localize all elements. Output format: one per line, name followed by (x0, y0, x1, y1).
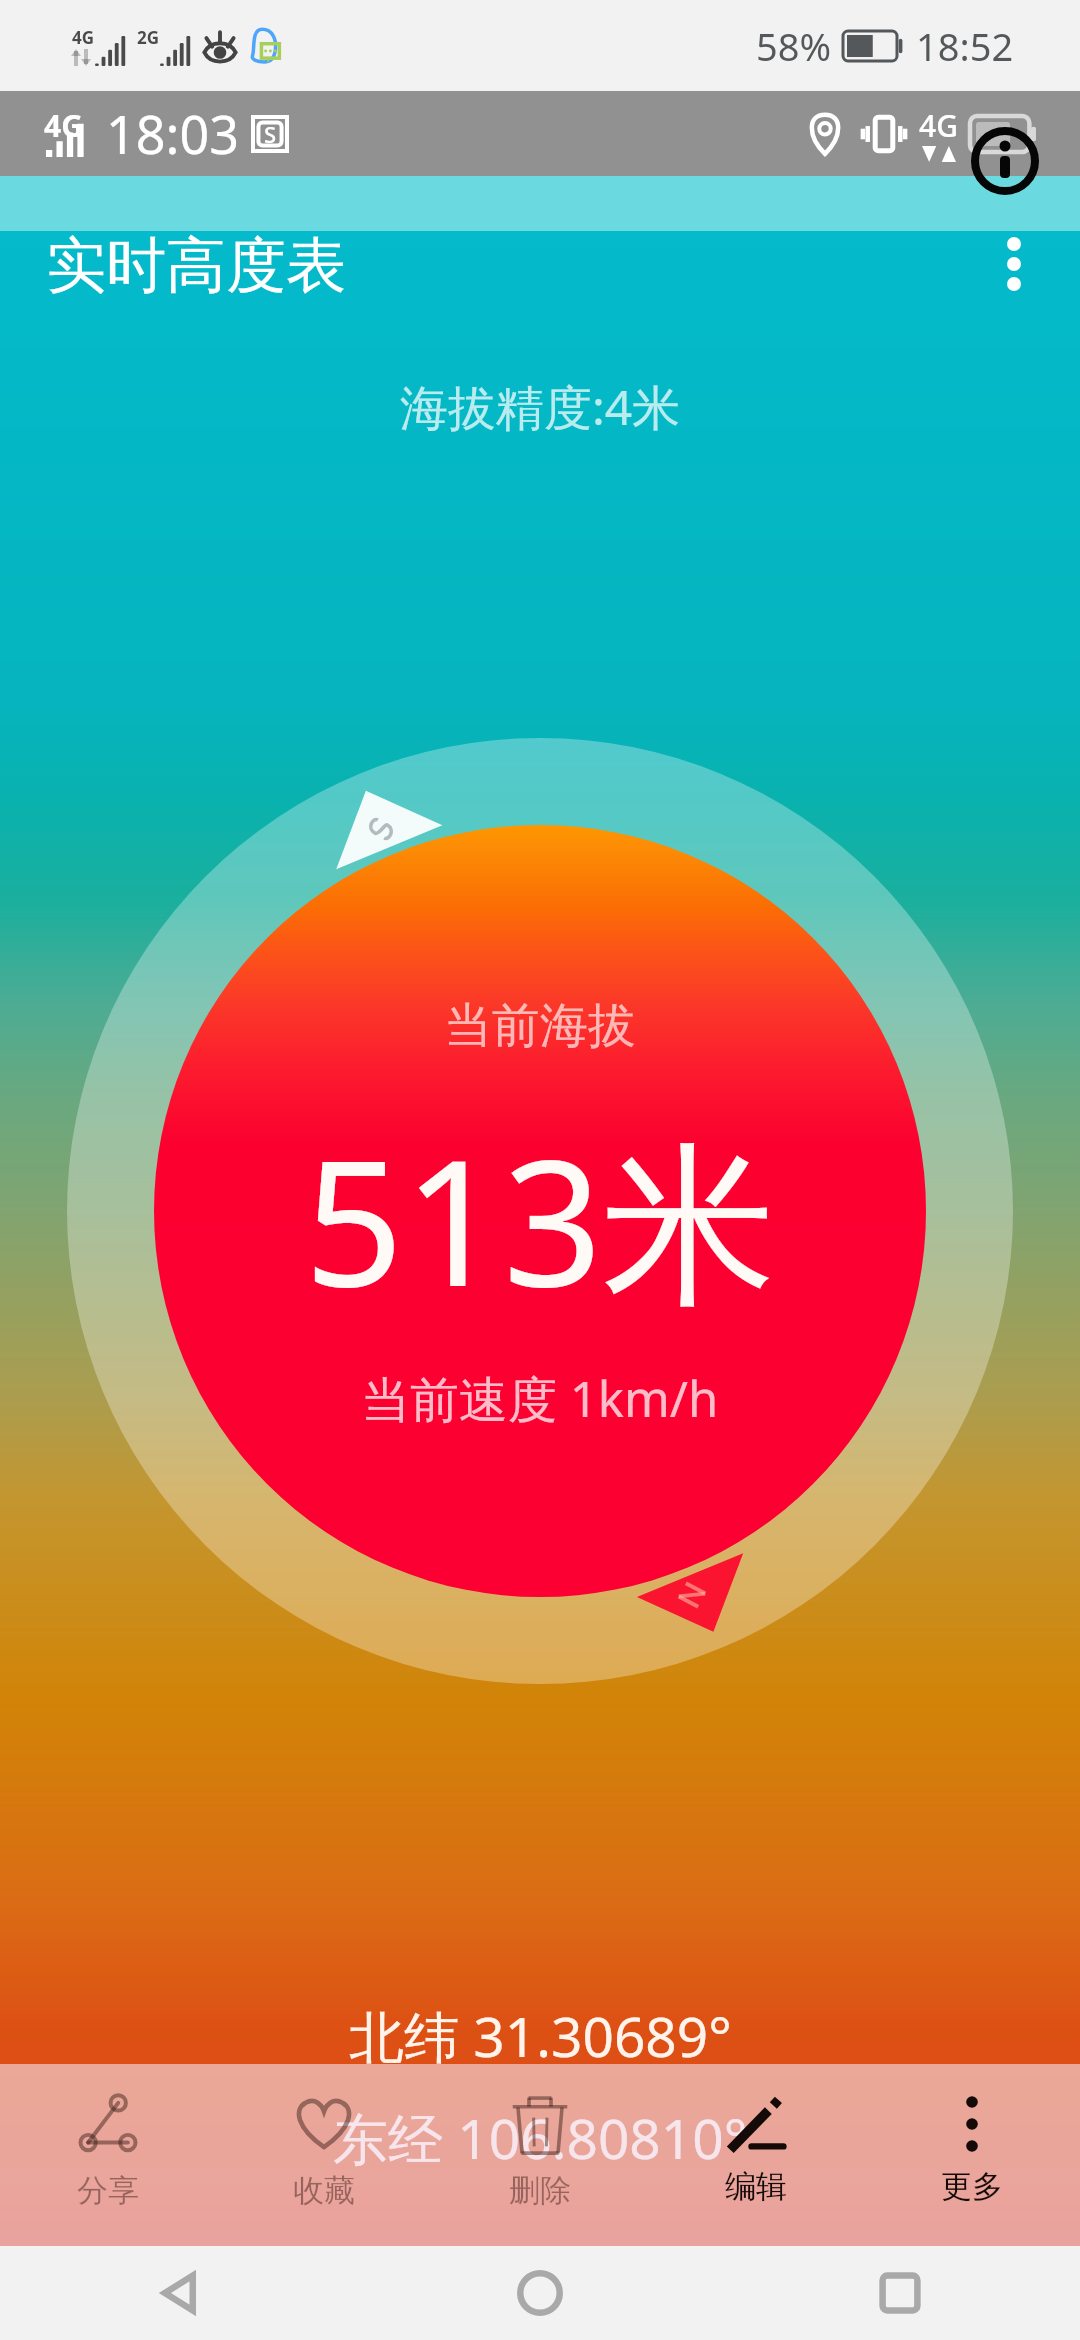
staticText: 4G (72, 26, 95, 49)
button[interactable]: More options (962, 212, 1066, 316)
staticText: 513米 (304, 1100, 777, 1338)
staticText: 4G (919, 105, 958, 146)
button[interactable]: Back (0, 2246, 360, 2340)
button[interactable]: Recents (720, 2246, 1080, 2340)
button[interactable]: 分享 (0, 2064, 216, 2246)
button[interactable]: Home (360, 2246, 720, 2340)
staticText: 编辑 (725, 2167, 787, 2206)
staticText: S (264, 119, 277, 149)
staticText: 2G (137, 26, 160, 49)
staticText: 北纬 31.30689° (349, 1998, 732, 2073)
staticText: 东经 106.80810° (333, 2100, 748, 2175)
staticText: 4G (44, 105, 83, 146)
staticText: 当前海拔 (444, 996, 636, 1056)
staticText: 实时高度表 (46, 228, 346, 304)
button[interactable]: 删除 (432, 2064, 648, 2246)
staticText: 收藏 (293, 2171, 355, 2210)
staticText: 删除 (509, 2171, 571, 2210)
staticText: 58% (756, 20, 832, 72)
staticText: 分享 (77, 2171, 139, 2210)
staticText: 18:03 (106, 98, 239, 169)
button[interactable]: 编辑 (648, 2064, 864, 2246)
button[interactable]: 收藏 (216, 2064, 432, 2246)
staticText: 更多 (941, 2167, 1003, 2206)
button[interactable]: 更多 (864, 2064, 1080, 2246)
button[interactable]: Info (971, 127, 1039, 195)
staticText: 18:52 (916, 20, 1014, 72)
staticText: 当前速度 1km/h (361, 1365, 719, 1432)
staticText: 海拔精度:4米 (400, 374, 681, 440)
